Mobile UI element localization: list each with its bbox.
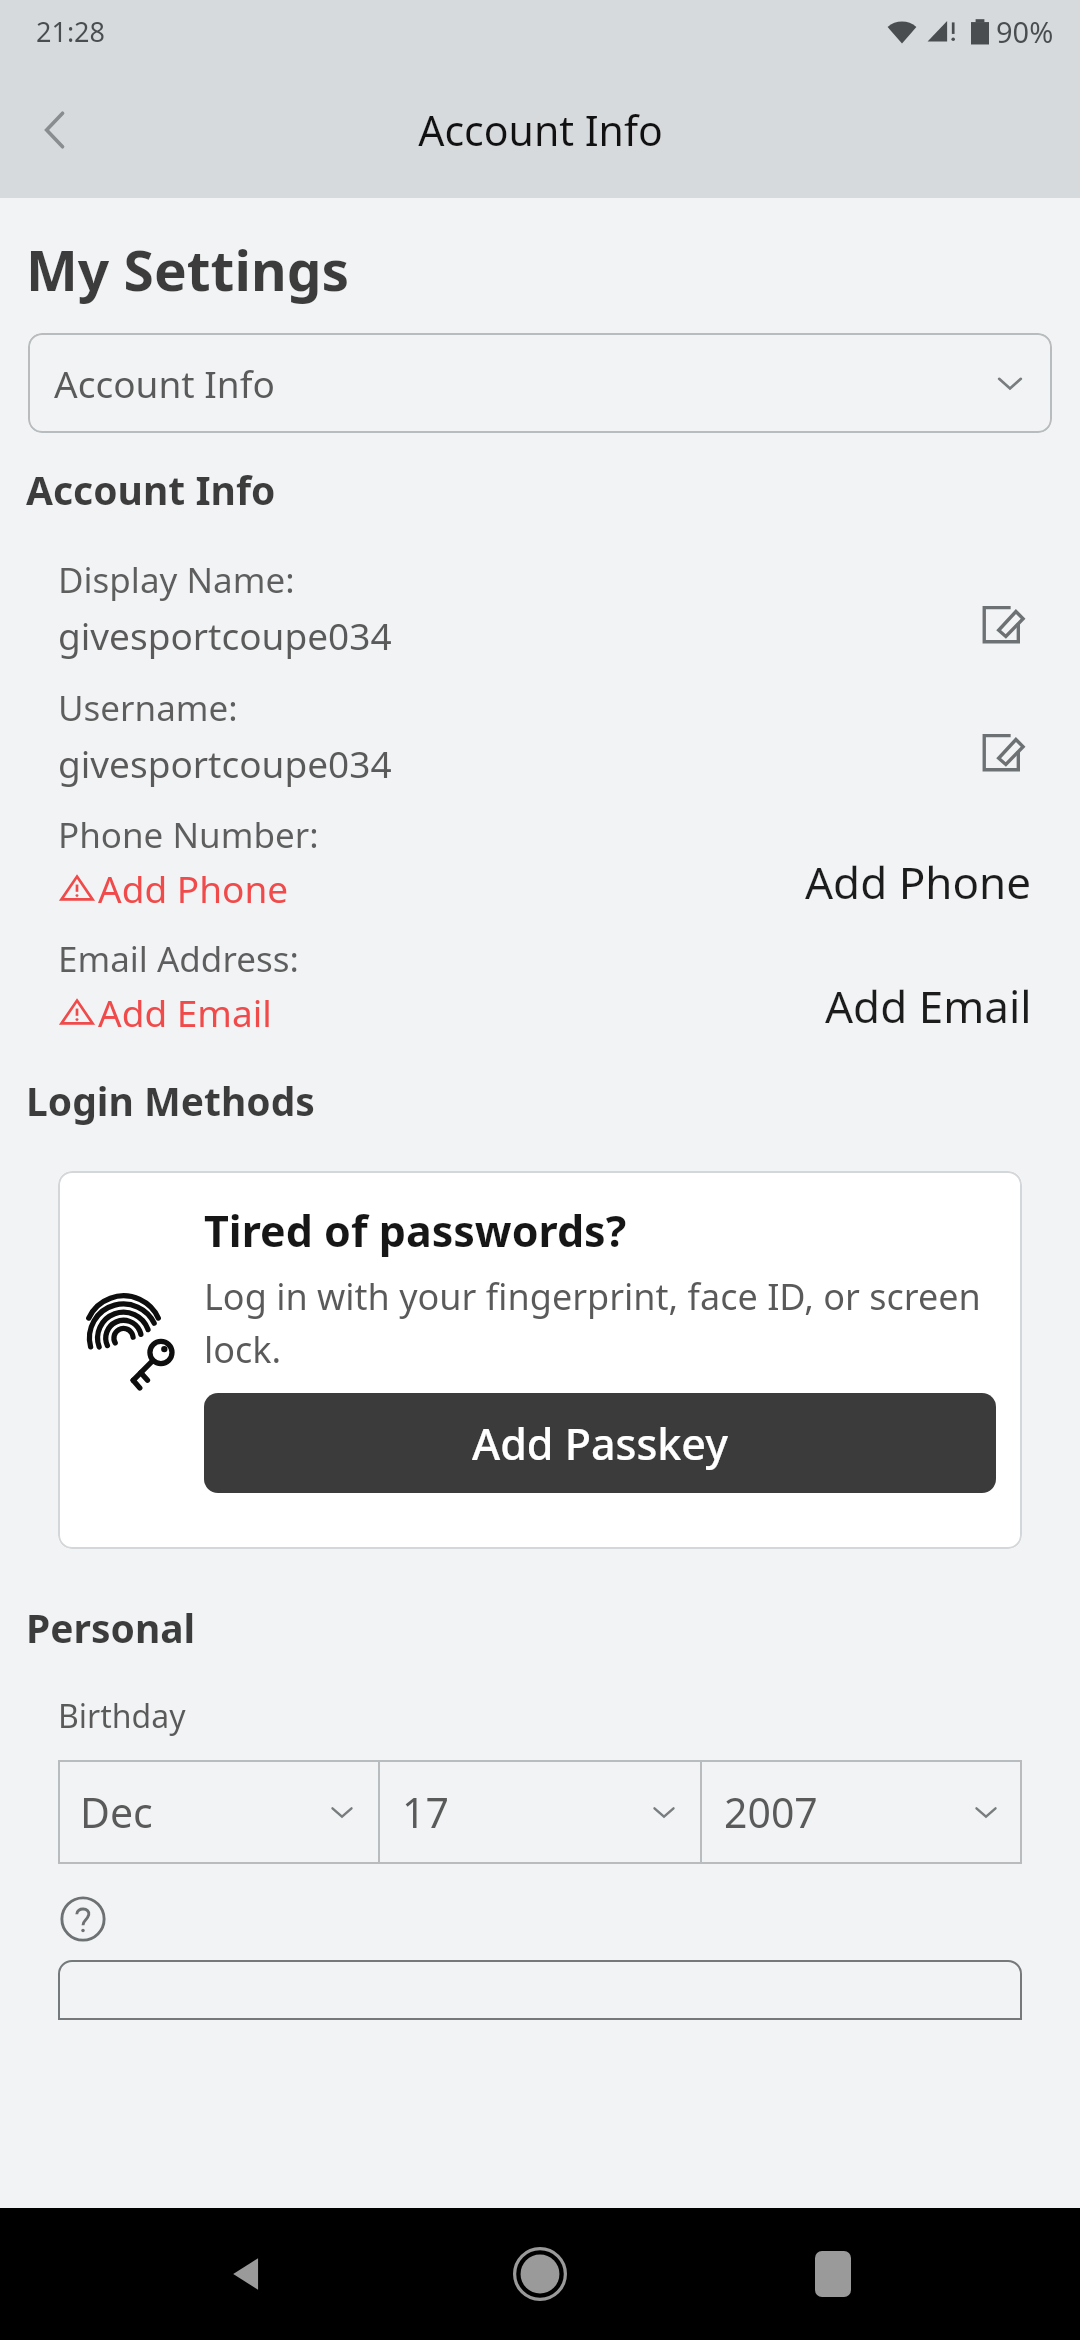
button[interactable]: Back bbox=[201, 2228, 293, 2320]
button[interactable]: 2007 bbox=[702, 1760, 1022, 1864]
button[interactable]: Recent apps bbox=[787, 2228, 879, 2320]
button[interactable]: Home bbox=[494, 2228, 586, 2320]
staticText: Tired of passwords? bbox=[204, 1201, 627, 1260]
staticText: Log in with your fingerprint, face ID, o… bbox=[204, 1272, 996, 1373]
staticText: Dec bbox=[80, 1784, 153, 1840]
staticText: Add Passkey bbox=[472, 1414, 728, 1473]
button[interactable]: Help bbox=[56, 1892, 110, 1946]
staticText: Add Email bbox=[825, 976, 1032, 1036]
staticText: Username: bbox=[58, 684, 238, 732]
button[interactable]: Edit Username: bbox=[968, 718, 1036, 786]
staticText: Email Address: bbox=[58, 935, 299, 983]
staticText: 2007 bbox=[724, 1784, 818, 1840]
staticText: Login Methods bbox=[26, 1074, 315, 1127]
staticText: Birthday bbox=[58, 1694, 186, 1738]
button[interactable]: Add Passkey bbox=[204, 1393, 996, 1493]
button[interactable]: Add Phone bbox=[801, 848, 1036, 916]
staticText: 17 bbox=[402, 1784, 449, 1840]
staticText: Account Info bbox=[26, 463, 276, 516]
staticText: Add Phone bbox=[98, 863, 289, 913]
button[interactable]: Edit Display Name: bbox=[968, 590, 1036, 658]
staticText: givesportcoupe034 bbox=[58, 610, 392, 660]
button[interactable]: Add Email bbox=[821, 972, 1036, 1040]
button[interactable]: 17 bbox=[380, 1760, 700, 1864]
staticText: 90% bbox=[996, 12, 1054, 51]
staticText: Personal bbox=[26, 1601, 196, 1654]
button[interactable]: Back bbox=[16, 91, 94, 169]
staticText: 21:28 bbox=[36, 13, 106, 50]
button[interactable]: Account Info bbox=[28, 333, 1052, 433]
staticText: Display Name: bbox=[58, 556, 295, 604]
staticText: givesportcoupe034 bbox=[58, 738, 392, 788]
staticText: Add Email bbox=[98, 987, 272, 1037]
button[interactable]: Dec bbox=[58, 1760, 378, 1864]
staticText: Phone Number: bbox=[58, 811, 319, 859]
staticText: Account Info bbox=[54, 358, 275, 408]
staticText: Add Phone bbox=[805, 852, 1032, 912]
staticText: My Settings bbox=[26, 232, 350, 307]
button[interactable] bbox=[58, 1960, 1022, 2020]
staticText: Account Info bbox=[418, 102, 663, 158]
